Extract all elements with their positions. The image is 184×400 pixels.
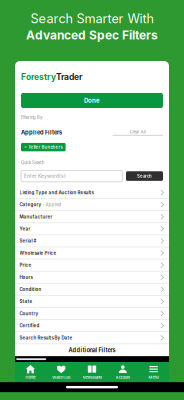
button[interactable]: Category: [15, 199, 169, 211]
button[interactable]: Search Results By Date: [15, 332, 169, 344]
staticText: Condition: [19, 287, 41, 292]
staticText: Clear All: [130, 130, 146, 135]
button[interactable]: State: [15, 296, 169, 308]
button[interactable]: Year: [15, 223, 169, 235]
button[interactable]: Wholesale Price: [15, 247, 169, 259]
staticText: Feller Bunchers: [29, 145, 63, 150]
button[interactable]: Done: [21, 93, 163, 108]
staticText: Category: [19, 202, 41, 207]
button[interactable]: Menu: [138, 361, 169, 383]
button[interactable]: Hours: [15, 271, 169, 284]
staticText: Trader: [56, 72, 82, 82]
staticText: Filtering By:: [21, 115, 43, 120]
button[interactable]: Clear All: [112, 130, 163, 135]
button[interactable]: Condition: [15, 284, 169, 296]
button[interactable]: Watch List: [46, 361, 77, 383]
staticText: Wholesale Price: [19, 250, 56, 256]
staticText: Country: [19, 311, 38, 316]
staticText: Search Smarter With: [30, 11, 153, 26]
button[interactable]: Newsstand: [77, 361, 107, 383]
staticText: - Applied: [41, 202, 61, 207]
button[interactable]: Manufacturer: [15, 211, 169, 223]
staticText: Newsstand: [82, 375, 101, 380]
staticText: ✕: [24, 145, 27, 149]
button[interactable]: Country: [15, 308, 169, 320]
staticText: Price: [19, 262, 31, 268]
staticText: Hours: [19, 274, 32, 280]
staticText: Menu: [149, 375, 159, 380]
staticText: Manufacturer: [19, 214, 52, 219]
staticText: Search Results By Date: [19, 335, 72, 340]
staticText: Search: [137, 173, 152, 179]
staticText: Year: [19, 226, 30, 232]
staticText: Done: [84, 97, 100, 104]
staticText: Watch List: [52, 375, 70, 380]
staticText: Listing Type and Auction Results: [19, 190, 93, 195]
button[interactable]: Home: [15, 361, 46, 383]
staticText: Advanced Spec Filters: [26, 28, 158, 42]
button[interactable]: Account: [107, 361, 138, 383]
staticText: Certified: [19, 323, 39, 328]
staticText: Forestry: [21, 72, 56, 82]
staticText: Serial #: [19, 238, 36, 244]
staticText: Enter Keyword(s): [24, 173, 66, 179]
staticText: Quick Search: [21, 160, 44, 165]
button[interactable]: Price: [15, 259, 169, 271]
staticText: Account: [116, 375, 130, 380]
staticText: Applied Filters: [21, 129, 62, 136]
button[interactable]: ✕: [21, 143, 66, 151]
button[interactable]: Search: [126, 171, 163, 181]
staticText: State: [19, 299, 32, 304]
button[interactable]: Listing Type and Auction Results: [15, 187, 169, 199]
staticText: Home: [25, 375, 35, 380]
button[interactable]: Serial #: [15, 235, 169, 247]
staticText: Additional Filters: [68, 347, 115, 354]
button[interactable]: Certified: [15, 320, 169, 332]
